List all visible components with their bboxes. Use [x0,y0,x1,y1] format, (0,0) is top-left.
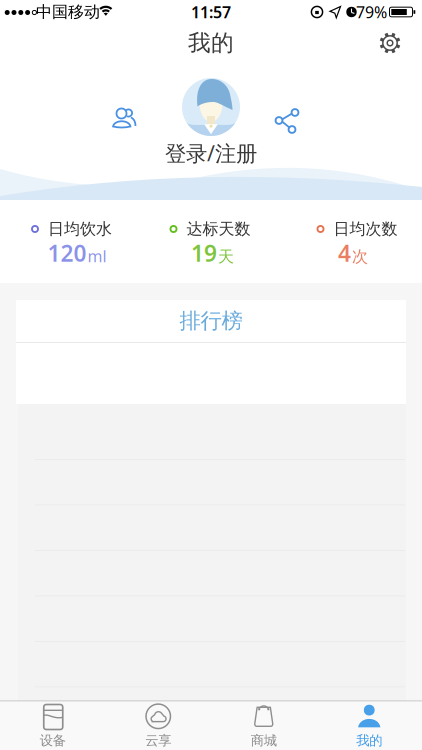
staticText: 19 [191,238,217,268]
button[interactable]: 分享 [265,99,309,143]
staticText: 云享 [145,732,171,749]
button[interactable]: 好友 [102,97,146,141]
staticText: 中国移动 [36,2,100,22]
staticText: 登录/注册 [165,139,257,167]
button[interactable]: 商城 [211,701,316,750]
staticText: 4 [338,238,351,268]
staticText: ml [87,245,106,266]
staticText: 11:57 [191,1,231,23]
staticText: 设备 [40,732,66,749]
staticText: 120 [47,238,86,268]
staticText: 我的 [188,29,234,57]
button[interactable]: Settings [368,21,412,65]
staticText: 79% [356,1,387,23]
staticText: 天 [218,247,234,267]
staticText: 达标天数 [186,219,250,239]
staticText: 日均饮水 [48,219,112,239]
button[interactable]: 我的 [317,701,422,750]
staticText: 日均次数 [333,219,397,239]
button[interactable]: 云享 [106,701,211,750]
staticText: 次 [352,247,368,267]
staticText: 排行榜 [179,308,242,334]
button[interactable]: 排行榜 [16,300,406,342]
button[interactable]: 登录/注册 [153,134,269,172]
staticText: 商城 [251,732,277,749]
staticText: 我的 [356,732,382,749]
button[interactable]: 设备 [0,701,105,750]
